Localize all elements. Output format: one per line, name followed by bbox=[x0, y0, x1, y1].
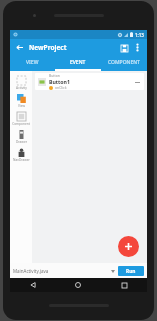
staticText: VIEW bbox=[26, 59, 39, 66]
staticText: Button bbox=[49, 73, 60, 78]
button[interactable]: VIEW bbox=[10, 56, 55, 69]
staticText: NewProject bbox=[29, 43, 67, 52]
staticText: EVENT bbox=[70, 59, 86, 66]
button[interactable]: Back bbox=[10, 278, 55, 292]
staticText: MainActivity.java bbox=[13, 268, 49, 274]
button[interactable]: Back bbox=[14, 42, 25, 53]
button[interactable]: NavDrawer bbox=[10, 146, 32, 164]
button[interactable]: Activity bbox=[10, 74, 32, 92]
staticText: Button1 bbox=[49, 78, 70, 85]
button[interactable]: Recent apps bbox=[101, 278, 147, 292]
button[interactable]: MainActivity.java bbox=[13, 266, 118, 276]
staticText: Run bbox=[126, 268, 136, 275]
button[interactable]: Component bbox=[10, 110, 32, 128]
staticText: NavDrawer bbox=[13, 158, 30, 162]
button[interactable]: Home bbox=[55, 278, 101, 292]
button[interactable]: More options bbox=[132, 42, 143, 53]
button[interactable]: Run bbox=[118, 266, 144, 276]
button[interactable]: Button bbox=[35, 73, 144, 90]
button[interactable]: Drawer bbox=[10, 128, 32, 146]
staticText: Drawer bbox=[16, 140, 27, 144]
button[interactable]: Add component bbox=[118, 236, 139, 257]
staticText: COMPONENT bbox=[108, 59, 140, 66]
staticText: Activity bbox=[16, 86, 27, 90]
button[interactable]: View bbox=[10, 92, 32, 110]
button[interactable]: Save bbox=[118, 42, 130, 54]
staticText: 1:13 bbox=[135, 32, 144, 38]
staticText: onClick bbox=[55, 85, 67, 90]
button[interactable]: Remove bbox=[133, 78, 141, 86]
staticText: View bbox=[18, 104, 25, 108]
button[interactable]: EVENT bbox=[55, 56, 101, 69]
staticText: Component bbox=[12, 122, 30, 126]
button[interactable]: COMPONENT bbox=[101, 56, 147, 69]
